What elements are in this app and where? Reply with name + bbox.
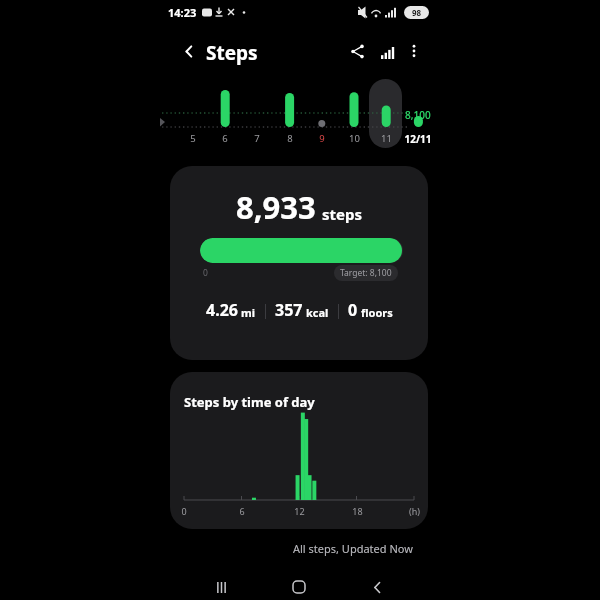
- staticText: Target: 8,100: [340, 267, 392, 279]
- staticText: 357: [275, 299, 303, 321]
- staticText: 0: [203, 267, 208, 279]
- button[interactable]: Steps by time of day: [170, 372, 428, 529]
- staticText: 7: [254, 132, 260, 145]
- staticText: (h): [409, 505, 420, 517]
- staticText: 4.26: [206, 299, 238, 321]
- button[interactable]: Steps: [206, 40, 258, 66]
- staticText: 6: [222, 132, 228, 145]
- staticText: 14:23: [168, 5, 197, 20]
- staticText: kcal: [306, 305, 329, 320]
- button[interactable]: 8,933: [170, 166, 428, 360]
- staticText: 98: [412, 7, 422, 18]
- staticText: 0: [181, 505, 187, 517]
- staticText: 10: [349, 132, 360, 145]
- staticText: All steps, Updated Now: [293, 541, 413, 556]
- staticText: 11: [381, 132, 392, 145]
- staticText: 9: [319, 132, 325, 145]
- button[interactable]: More options: [400, 37, 428, 65]
- staticText: 5: [190, 132, 196, 145]
- staticText: floors: [361, 305, 393, 320]
- staticText: 8,100: [405, 108, 431, 122]
- button[interactable]: Home: [278, 572, 320, 600]
- staticText: 6: [239, 505, 245, 517]
- staticText: 18: [352, 505, 363, 517]
- button[interactable]: Back: [356, 572, 398, 600]
- staticText: 0: [348, 299, 358, 321]
- staticText: 12/11: [404, 132, 432, 146]
- staticText: 8: [287, 132, 293, 145]
- staticText: steps: [322, 204, 363, 224]
- button[interactable]: Share: [343, 37, 371, 65]
- staticText: 8,933: [236, 186, 316, 228]
- staticText: Steps by time of day: [184, 393, 315, 411]
- button[interactable]: Back: [174, 36, 204, 66]
- staticText: mi: [241, 305, 256, 320]
- button[interactable]: Recent apps: [200, 572, 242, 600]
- button[interactable]: Chart: [373, 37, 401, 65]
- button[interactable]: [369, 79, 402, 148]
- staticText: 12: [294, 505, 305, 517]
